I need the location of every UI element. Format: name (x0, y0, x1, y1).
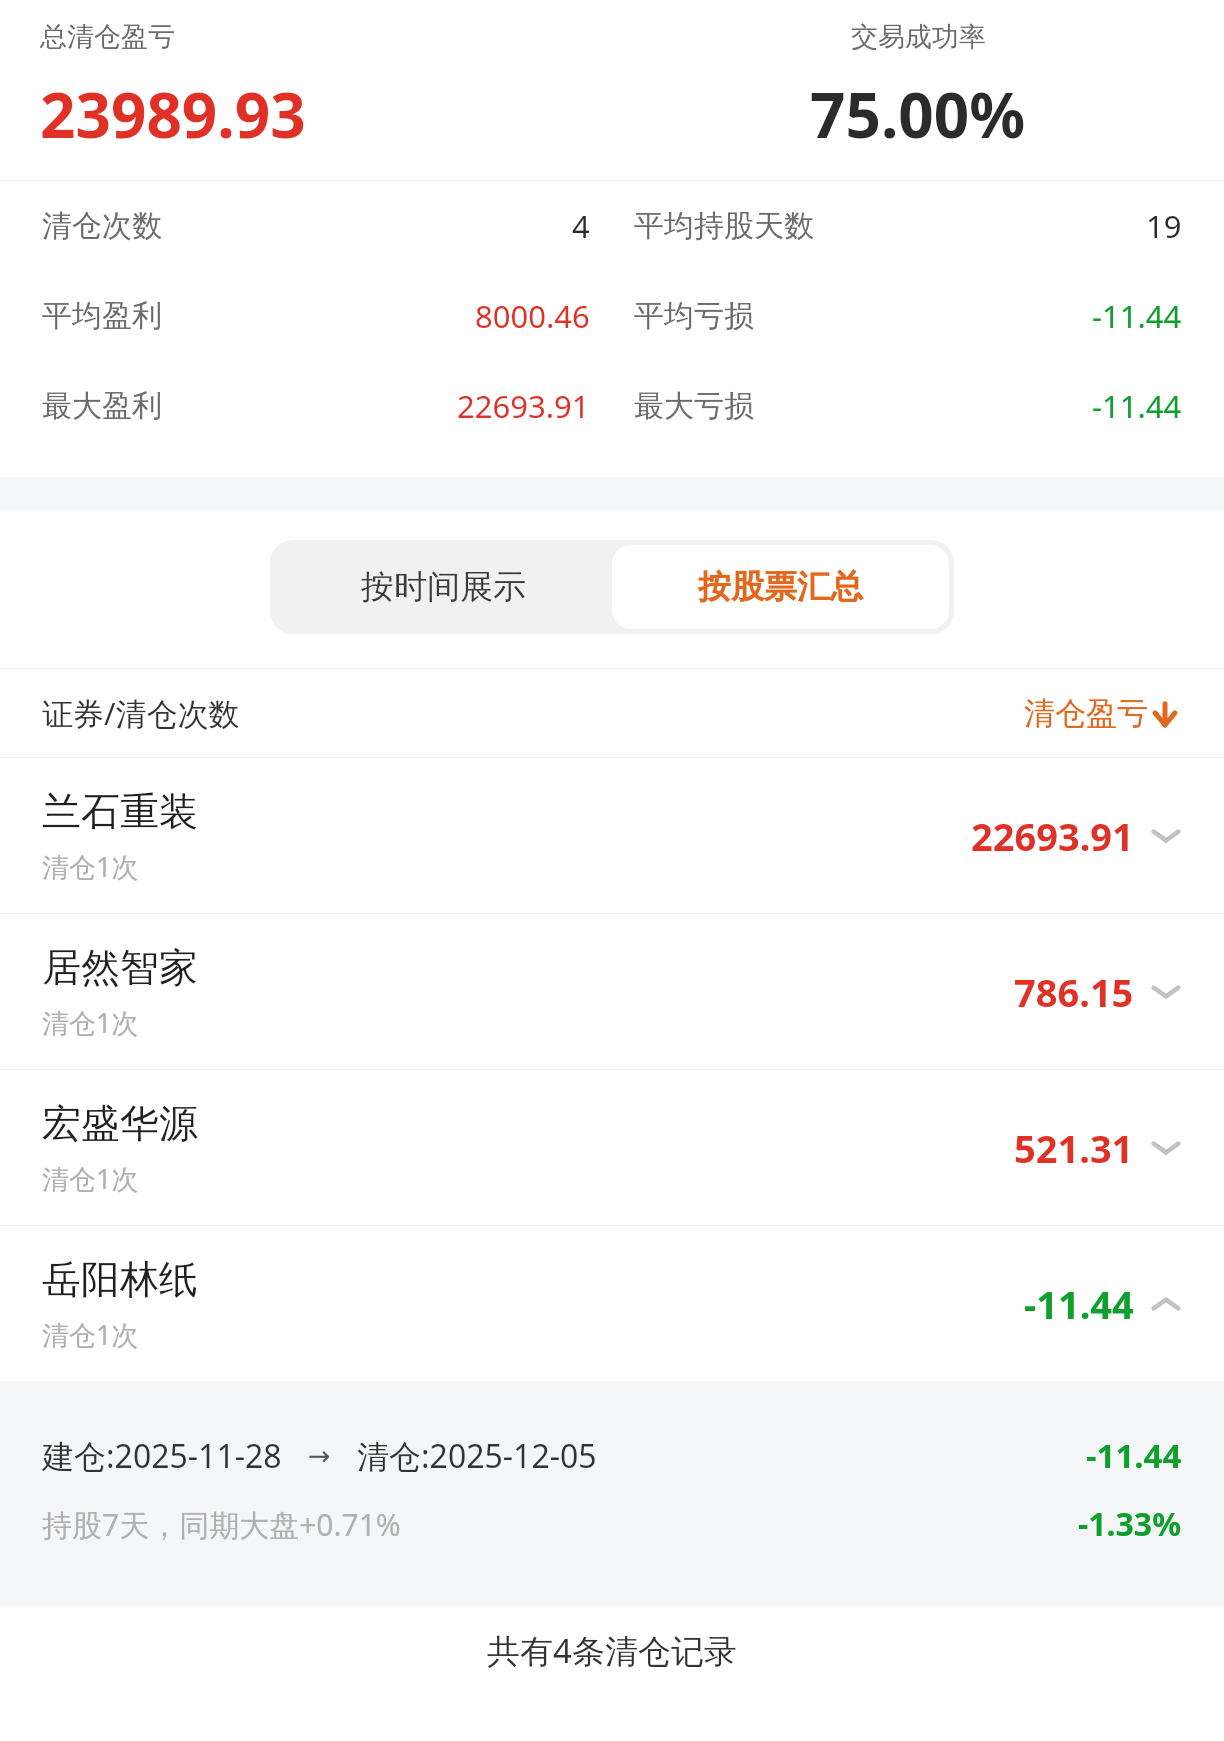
staticText: 清仓盈亏 (1024, 694, 1148, 733)
staticText: 平均亏损 (634, 297, 754, 335)
staticText: -1.33% (1078, 1502, 1182, 1546)
button[interactable]: 兰石重装 (0, 758, 1224, 913)
staticText: → (308, 1440, 331, 1471)
staticText: 清仓1次 (42, 1160, 139, 1197)
staticText: -11.44 (1092, 295, 1182, 337)
staticText: 8000.46 (475, 295, 590, 337)
button[interactable]: 按股票汇总 (612, 545, 949, 629)
staticText: 清仓1次 (42, 848, 139, 885)
other: Sort descending (1148, 697, 1182, 731)
other: Expand (1144, 970, 1188, 1014)
staticText: 交易成功率 (851, 20, 986, 54)
staticText: 平均持股天数 (634, 207, 814, 245)
staticText: 22693.91 (971, 810, 1134, 862)
other: Expand (1144, 1126, 1188, 1170)
button[interactable]: 按时间展示 (275, 545, 612, 629)
staticText: -11.44 (1024, 1278, 1134, 1330)
staticText: 总清仓盈亏 (40, 20, 175, 54)
staticText: 证券/清仓次数 (42, 692, 240, 734)
staticText: 兰石重装 (42, 787, 198, 836)
staticText: 共有4条清仓记录 (487, 1628, 737, 1673)
other: Collapse (1144, 1282, 1188, 1326)
staticText: 521.31 (1014, 1122, 1134, 1174)
staticText: 按股票汇总 (698, 566, 863, 608)
button[interactable]: 岳阳林纸 (0, 1226, 1224, 1381)
staticText: 岳阳林纸 (42, 1255, 198, 1304)
staticText: 清仓次数 (42, 207, 162, 245)
button[interactable]: 宏盛华源 (0, 1070, 1224, 1225)
staticText: 最大亏损 (634, 387, 754, 425)
staticText: 居然智家 (42, 943, 198, 992)
other: Expand (1144, 814, 1188, 858)
staticText: 清仓1次 (42, 1316, 139, 1353)
button[interactable]: 清仓盈亏 (1024, 694, 1182, 733)
staticText: 4 (572, 205, 590, 247)
staticText: 持股7天，同期大盘+0.71% (42, 1504, 401, 1545)
staticText: 786.15 (1014, 966, 1134, 1018)
staticText: 平均盈利 (42, 297, 162, 335)
staticText: 清仓:2025-12-05 (357, 1434, 597, 1478)
staticText: 最大盈利 (42, 387, 162, 425)
button[interactable]: 居然智家 (0, 914, 1224, 1069)
staticText: 19 (1146, 205, 1182, 247)
staticText: 23989.93 (40, 72, 306, 156)
staticText: -11.44 (1086, 1433, 1182, 1478)
staticText: 22693.91 (457, 385, 590, 427)
staticText: 宏盛华源 (42, 1099, 198, 1148)
staticText: 清仓1次 (42, 1004, 139, 1041)
staticText: -11.44 (1092, 385, 1182, 427)
staticText: 按时间展示 (361, 566, 526, 608)
staticText: 建仓:2025-11-28 (42, 1434, 282, 1478)
staticText: 75.00% (810, 72, 1026, 156)
